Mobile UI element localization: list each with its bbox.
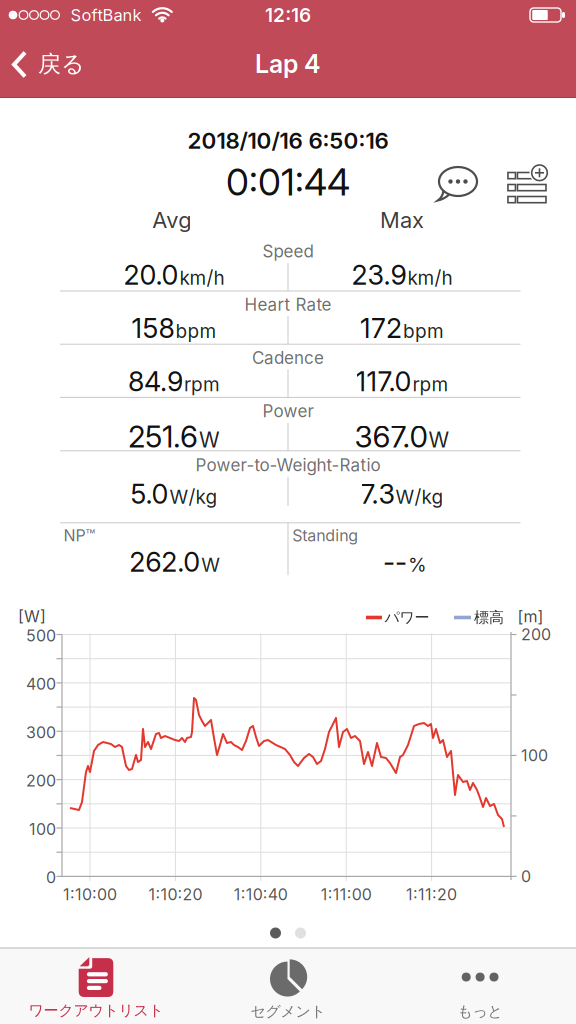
staticText: 1:10:40 [234, 885, 288, 904]
staticText: W [428, 427, 449, 453]
staticText: セグメント [250, 1002, 325, 1021]
button[interactable]: もっと [390, 954, 570, 1024]
staticText: 400 [26, 674, 56, 694]
staticText: 1:11:20 [406, 885, 457, 904]
staticText: 172 [360, 312, 402, 345]
staticText: bpm [175, 320, 216, 343]
staticText: 251.6 [128, 419, 198, 455]
button[interactable]: Comment [432, 159, 484, 207]
staticText: W [201, 553, 220, 576]
button[interactable]: Back [10, 42, 100, 86]
staticText: 0 [521, 867, 531, 886]
button[interactable]: ワークアウトリスト [6, 954, 186, 1024]
staticText: km/h [179, 266, 224, 289]
staticText: 1:10:00 [63, 885, 117, 904]
staticText: Max [380, 207, 424, 233]
staticText: % [408, 553, 427, 576]
staticText: 20.0 [123, 259, 178, 291]
staticText: 200 [521, 625, 551, 644]
staticText: パワー [384, 608, 429, 627]
staticText: SoftBank [70, 5, 141, 25]
staticText: Avg [152, 207, 191, 233]
staticText: km/h [407, 266, 452, 289]
staticText: 100 [29, 819, 56, 839]
staticText: 12:16 [265, 3, 311, 26]
button[interactable]: Add lap [507, 166, 555, 210]
button[interactable]: セグメント [198, 954, 378, 1024]
staticText: 2018/10/16 6:50:16 [187, 127, 388, 154]
staticText: 367.0 [354, 419, 427, 455]
staticText: Lap 4 [255, 49, 321, 79]
staticText: Cadence [252, 347, 324, 368]
staticText: Power-to-Weight-Ratio [195, 455, 380, 475]
staticText: 262.0 [129, 546, 200, 578]
staticText: Speed [262, 241, 313, 262]
staticText: Standing [292, 526, 358, 545]
staticText: [m] [517, 607, 543, 626]
staticText: ワークアウトリスト [28, 1001, 163, 1020]
staticText: rpm [184, 373, 220, 396]
staticText: W/kg [395, 485, 443, 508]
staticText: 7.3 [360, 478, 394, 510]
staticText: W [199, 427, 220, 453]
staticText: 戻る [38, 49, 85, 78]
staticText: NP™ [63, 526, 95, 545]
staticText: 158 [131, 312, 174, 345]
staticText: W/kg [169, 485, 217, 508]
staticText: 117.0 [355, 365, 411, 398]
staticText: 200 [26, 771, 56, 790]
staticText: Power [262, 401, 313, 421]
staticText: [W] [18, 607, 46, 626]
staticText: -- [383, 546, 407, 578]
staticText: 0 [46, 868, 56, 887]
staticText: 84.9 [128, 365, 183, 398]
staticText: 500 [26, 626, 56, 645]
staticText: 100 [521, 746, 548, 765]
staticText: 1:11:00 [321, 885, 372, 904]
staticText: 5.0 [130, 478, 168, 510]
staticText: bpm [403, 320, 444, 343]
staticText: 1:10:20 [148, 885, 202, 904]
staticText: 23.9 [351, 259, 406, 291]
staticText: Heart Rate [244, 294, 331, 315]
staticText: 標高 [474, 608, 504, 627]
staticText: 0:01:44 [226, 160, 350, 204]
staticText: もっと [457, 1002, 502, 1021]
staticText: rpm [412, 373, 448, 396]
staticText: 300 [26, 723, 56, 742]
